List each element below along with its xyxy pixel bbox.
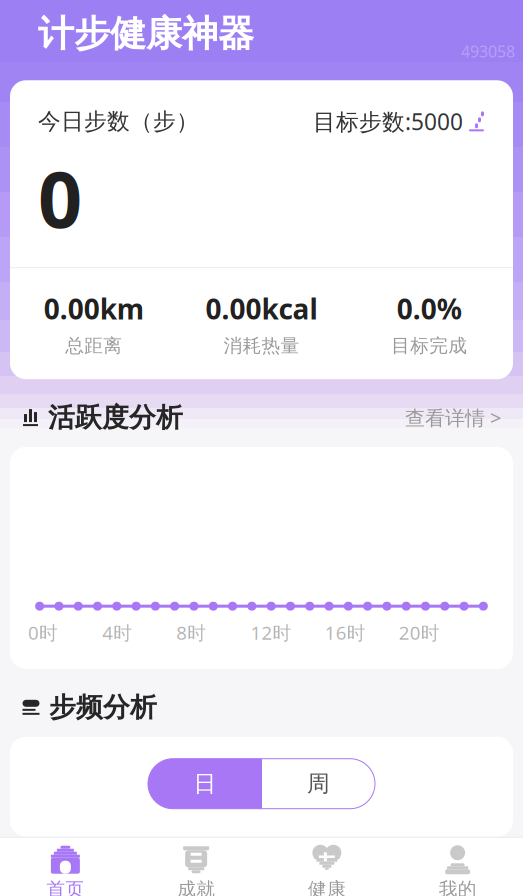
- staticText: 健康: [308, 878, 346, 896]
- button[interactable]: 日: [148, 759, 262, 809]
- staticText: 今日步数（步）: [38, 107, 199, 135]
- button[interactable]: 周: [262, 759, 375, 809]
- staticText: 0: [38, 146, 82, 249]
- staticText: 0.00km: [44, 290, 144, 327]
- staticText: 步频分析: [49, 691, 157, 724]
- staticText: 目标完成: [391, 334, 467, 357]
- button[interactable]: 首页: [0, 838, 131, 896]
- staticText: 0.00kcal: [205, 290, 317, 327]
- staticText: 消耗热量: [223, 334, 299, 357]
- staticText: 周: [307, 770, 330, 798]
- staticText: 查看详情 >: [405, 404, 501, 431]
- staticText: 0.0%: [397, 290, 462, 327]
- staticText: 493058: [461, 40, 515, 62]
- staticText: 成就: [177, 878, 215, 896]
- button[interactable]: 健康: [261, 838, 392, 896]
- button[interactable]: 成就: [131, 838, 262, 896]
- staticText: 4时: [102, 620, 132, 645]
- staticText: 活跃度分析: [48, 401, 183, 434]
- staticText: 计步健康神器: [38, 12, 254, 56]
- staticText: 20时: [399, 620, 440, 645]
- staticText: 我的: [439, 878, 477, 896]
- staticText: 0时: [28, 620, 58, 645]
- staticText: 总距离: [65, 334, 122, 357]
- staticText: 日: [193, 770, 216, 798]
- button[interactable]: 查看详情 >: [405, 404, 501, 431]
- button[interactable]: 我的: [392, 838, 523, 896]
- staticText: 首页: [46, 878, 84, 896]
- staticText: 8时: [176, 620, 206, 645]
- staticText: 12时: [250, 620, 291, 645]
- staticText: 16时: [325, 620, 366, 645]
- staticText: 目标步数:5000: [313, 106, 463, 136]
- button[interactable]: 目标步数:5000: [313, 106, 485, 136]
